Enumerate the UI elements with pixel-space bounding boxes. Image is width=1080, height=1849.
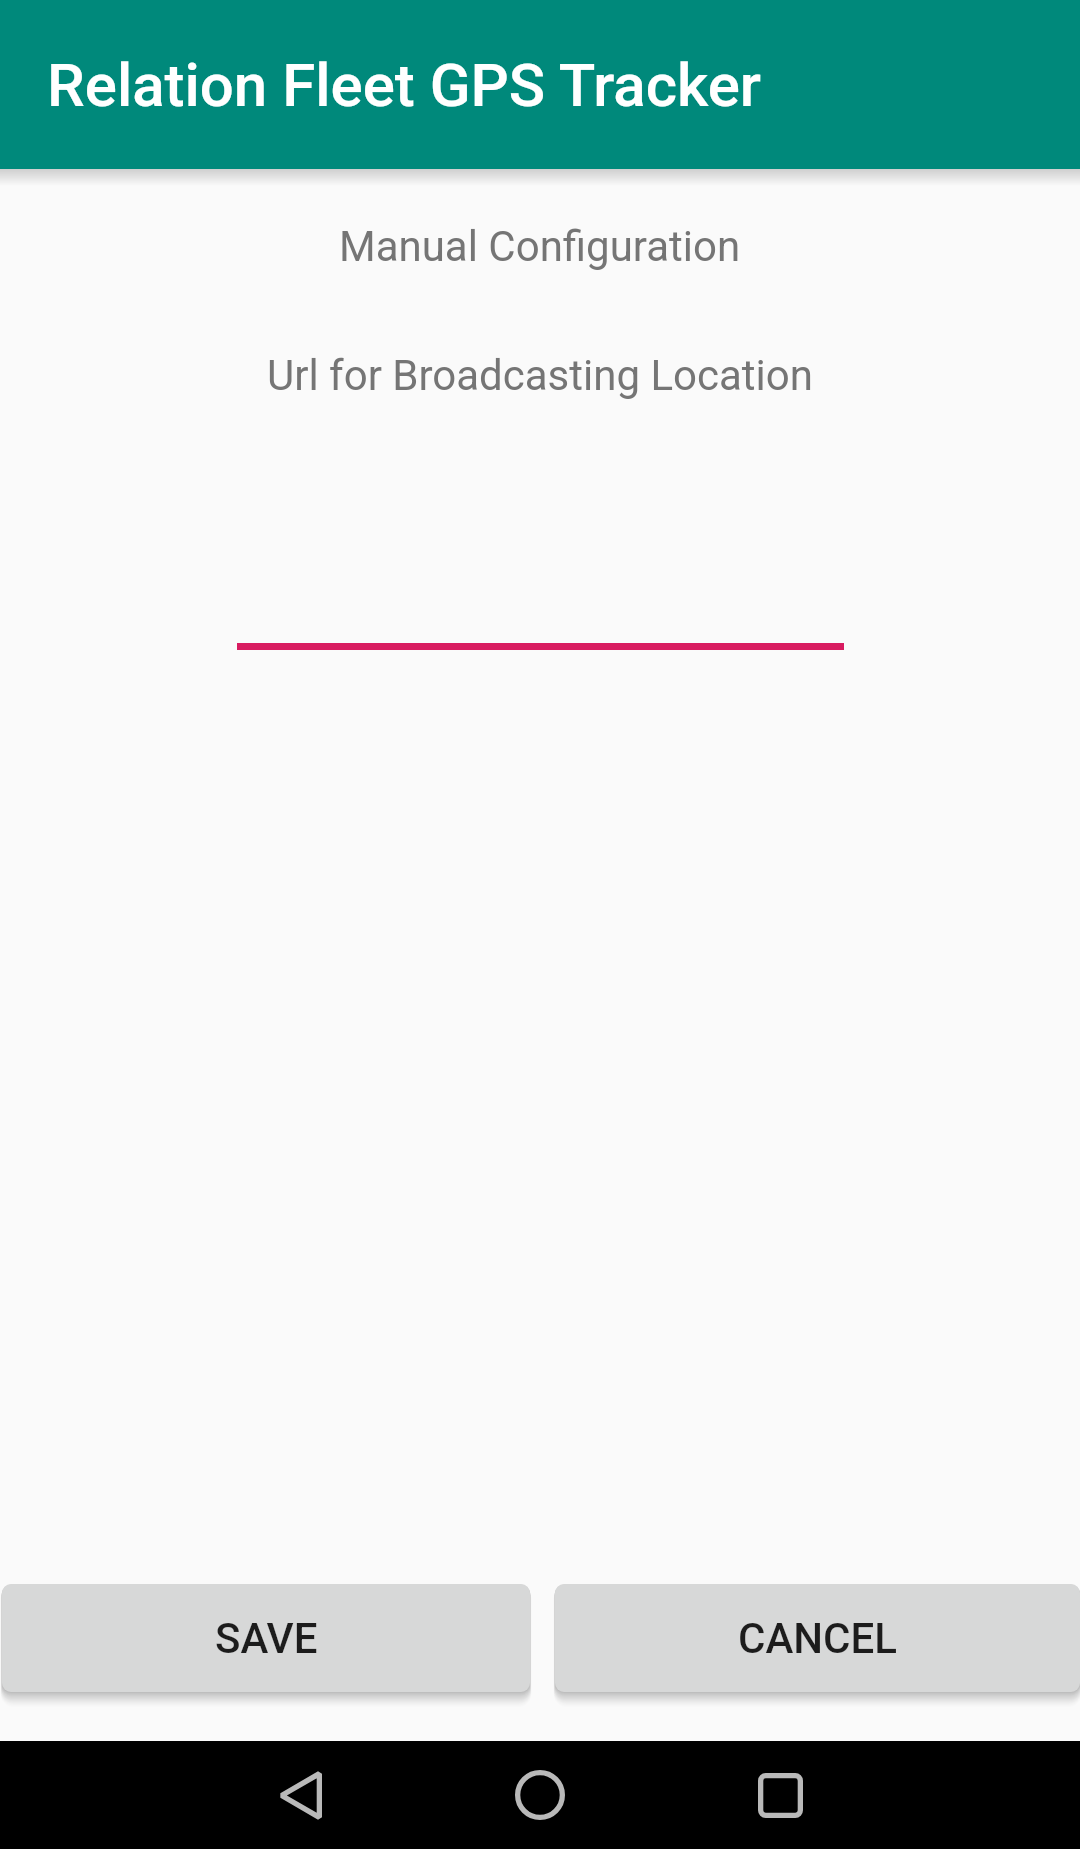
button[interactable]: Recent apps [660,1741,900,1849]
button[interactable]: SAVE [2,1584,530,1692]
button[interactable]: Home [420,1741,660,1849]
staticText: Manual Configuration [339,222,741,271]
staticText: Url for Broadcasting Location [267,351,813,400]
staticText: SAVE [215,1614,318,1663]
staticText: CANCEL [738,1614,897,1663]
button[interactable]: Url for broadcasting location input [237,520,844,650]
button[interactable]: CANCEL [555,1584,1080,1692]
staticText: Relation Fleet GPS Tracker [47,50,762,120]
button[interactable]: Back [180,1741,420,1849]
